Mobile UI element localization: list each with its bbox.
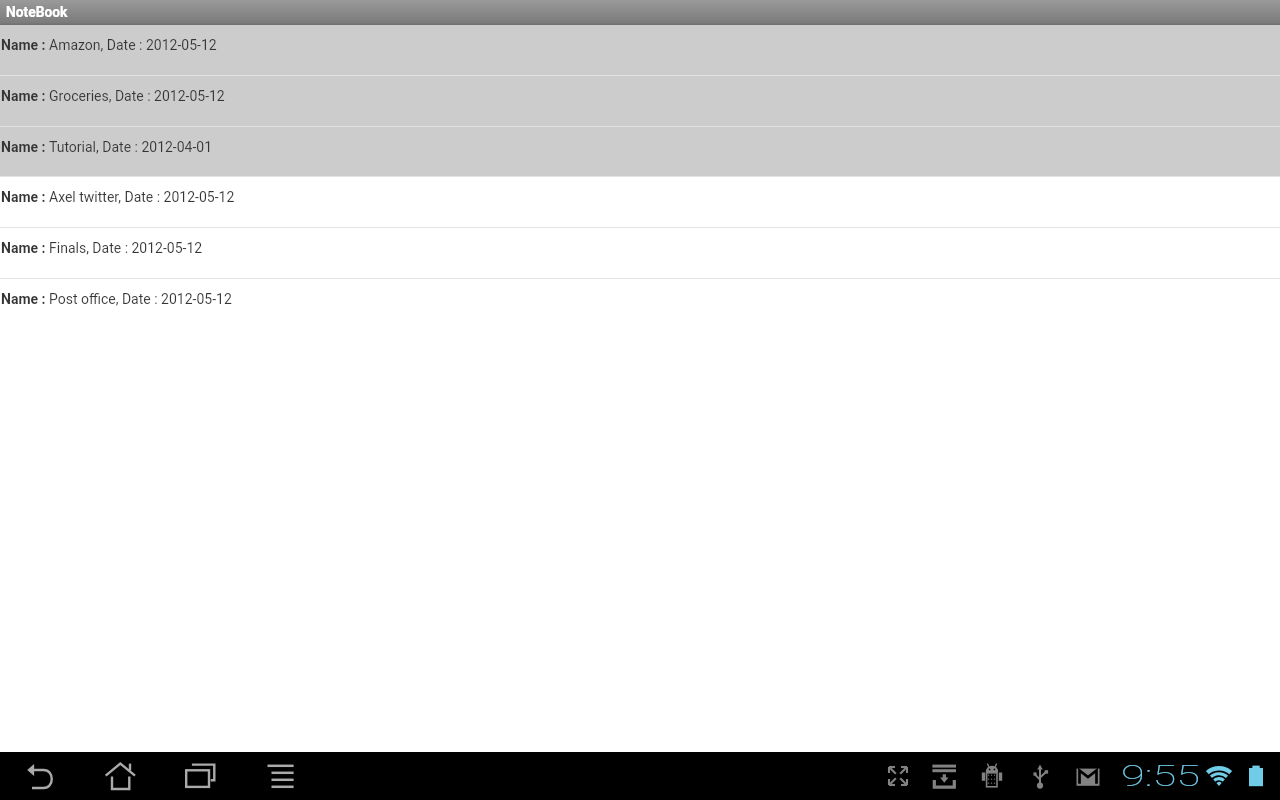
button[interactable]: Status and notifications, 9:55 — [880, 752, 1280, 800]
button[interactable]: Home — [80, 752, 160, 800]
staticText: Name : Post office, Date : 2012-05-12 — [1, 291, 232, 307]
other: USB connected — [1022, 752, 1058, 800]
staticText: Name : Groceries, Date : 2012-05-12 — [1, 88, 225, 104]
other: Fullscreen — [880, 752, 916, 800]
other: New mail — [1070, 752, 1106, 800]
button[interactable]: Name : Amazon, Date : 2012-05-12 — [0, 25, 1280, 75]
button[interactable]: Name : Groceries, Date : 2012-05-12 — [0, 76, 1280, 126]
staticText: Name : Tutorial, Date : 2012-04-01 — [1, 139, 213, 155]
button[interactable]: Name : Tutorial, Date : 2012-04-01 — [0, 127, 1280, 176]
button[interactable]: Menu — [241, 752, 321, 800]
button[interactable]: Recent apps — [160, 752, 240, 800]
other: Downloads — [926, 752, 962, 800]
other: USB debugging — [974, 752, 1010, 800]
button[interactable]: Name : Post office, Date : 2012-05-12 — [0, 279, 1280, 329]
button[interactable]: Back — [0, 752, 80, 800]
staticText: NoteBook — [6, 4, 68, 20]
staticText: Name : Amazon, Date : 2012-05-12 — [1, 37, 217, 53]
staticText: 9:55 — [1121, 759, 1200, 794]
staticText: Name : Finals, Date : 2012-05-12 — [1, 240, 203, 256]
staticText: Name : Axel twitter, Date : 2012-05-12 — [1, 189, 235, 205]
other: Battery full — [1240, 752, 1272, 800]
button[interactable]: Name : Finals, Date : 2012-05-12 — [0, 228, 1280, 278]
other: Wi-Fi — [1203, 752, 1235, 800]
button[interactable]: Name : Axel twitter, Date : 2012-05-12 — [0, 177, 1280, 227]
